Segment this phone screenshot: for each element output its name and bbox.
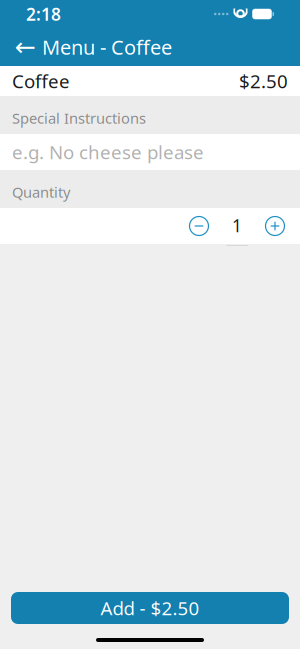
staticText: Coffee xyxy=(12,69,70,93)
button[interactable]: Increase quantity xyxy=(262,213,288,239)
button[interactable]: Decrease quantity xyxy=(186,213,212,239)
staticText: e.g. No cheese please xyxy=(12,140,204,164)
staticText: $2.50 xyxy=(239,69,288,93)
staticText: Add - $2.50 xyxy=(100,596,199,620)
staticText: 2:18 xyxy=(26,2,61,25)
staticText: Quantity xyxy=(12,182,70,202)
button[interactable]: Back xyxy=(8,28,42,66)
staticText: Special Instructions xyxy=(12,108,146,128)
staticText: Menu - Coffee xyxy=(42,34,172,60)
button[interactable]: Add - $2.50 xyxy=(11,592,289,624)
staticText: 1 xyxy=(232,214,242,237)
staticText: ← xyxy=(14,33,35,61)
